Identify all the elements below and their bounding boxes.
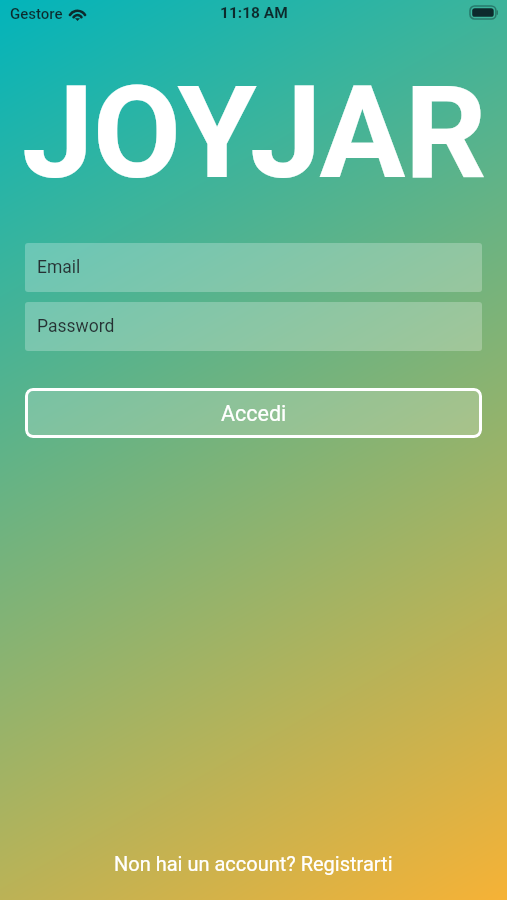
staticText: 11:18 AM [220,4,288,22]
button[interactable]: Accedi [25,388,482,438]
staticText: JOYJAR [22,58,486,198]
other: Wi-Fi signal [68,6,87,20]
button[interactable]: Non hai un account? Registrarti [106,846,401,881]
staticText: Password [37,316,115,337]
staticText: Non hai un account? Registrarti [114,852,393,875]
other: Battery full [470,6,498,19]
button[interactable]: Email [25,243,482,292]
staticText: Email [37,257,81,278]
button[interactable]: Password [25,302,482,351]
staticText: Gestore [10,5,63,23]
staticText: Accedi [221,401,287,426]
